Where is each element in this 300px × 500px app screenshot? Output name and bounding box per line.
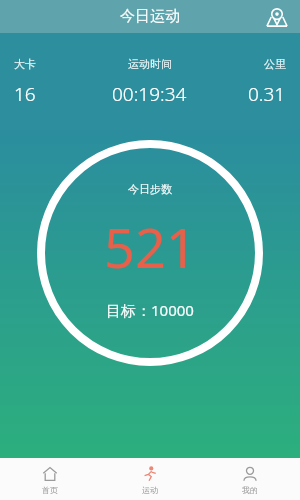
staticText: 0.31	[248, 81, 286, 107]
staticText: 首页	[42, 485, 58, 495]
staticText: 大卡	[14, 57, 36, 71]
button[interactable]: 我的	[200, 458, 300, 500]
button[interactable]: 今日步数	[37, 140, 263, 366]
staticText: 今日运动	[120, 7, 180, 26]
staticText: 00:19:34	[112, 81, 187, 107]
staticText: 公里	[264, 57, 286, 71]
staticText: 运动	[142, 485, 158, 495]
staticText: 我的	[242, 485, 258, 495]
staticText: 今日步数	[128, 182, 172, 196]
button[interactable]: 首页	[0, 458, 100, 500]
button[interactable]: 运动	[100, 458, 200, 500]
staticText: 目标：10000	[106, 300, 194, 320]
staticText: 16	[14, 81, 36, 107]
staticText: 521	[104, 210, 197, 284]
staticText: 运动时间	[128, 57, 172, 71]
button[interactable]: Map	[262, 2, 292, 32]
